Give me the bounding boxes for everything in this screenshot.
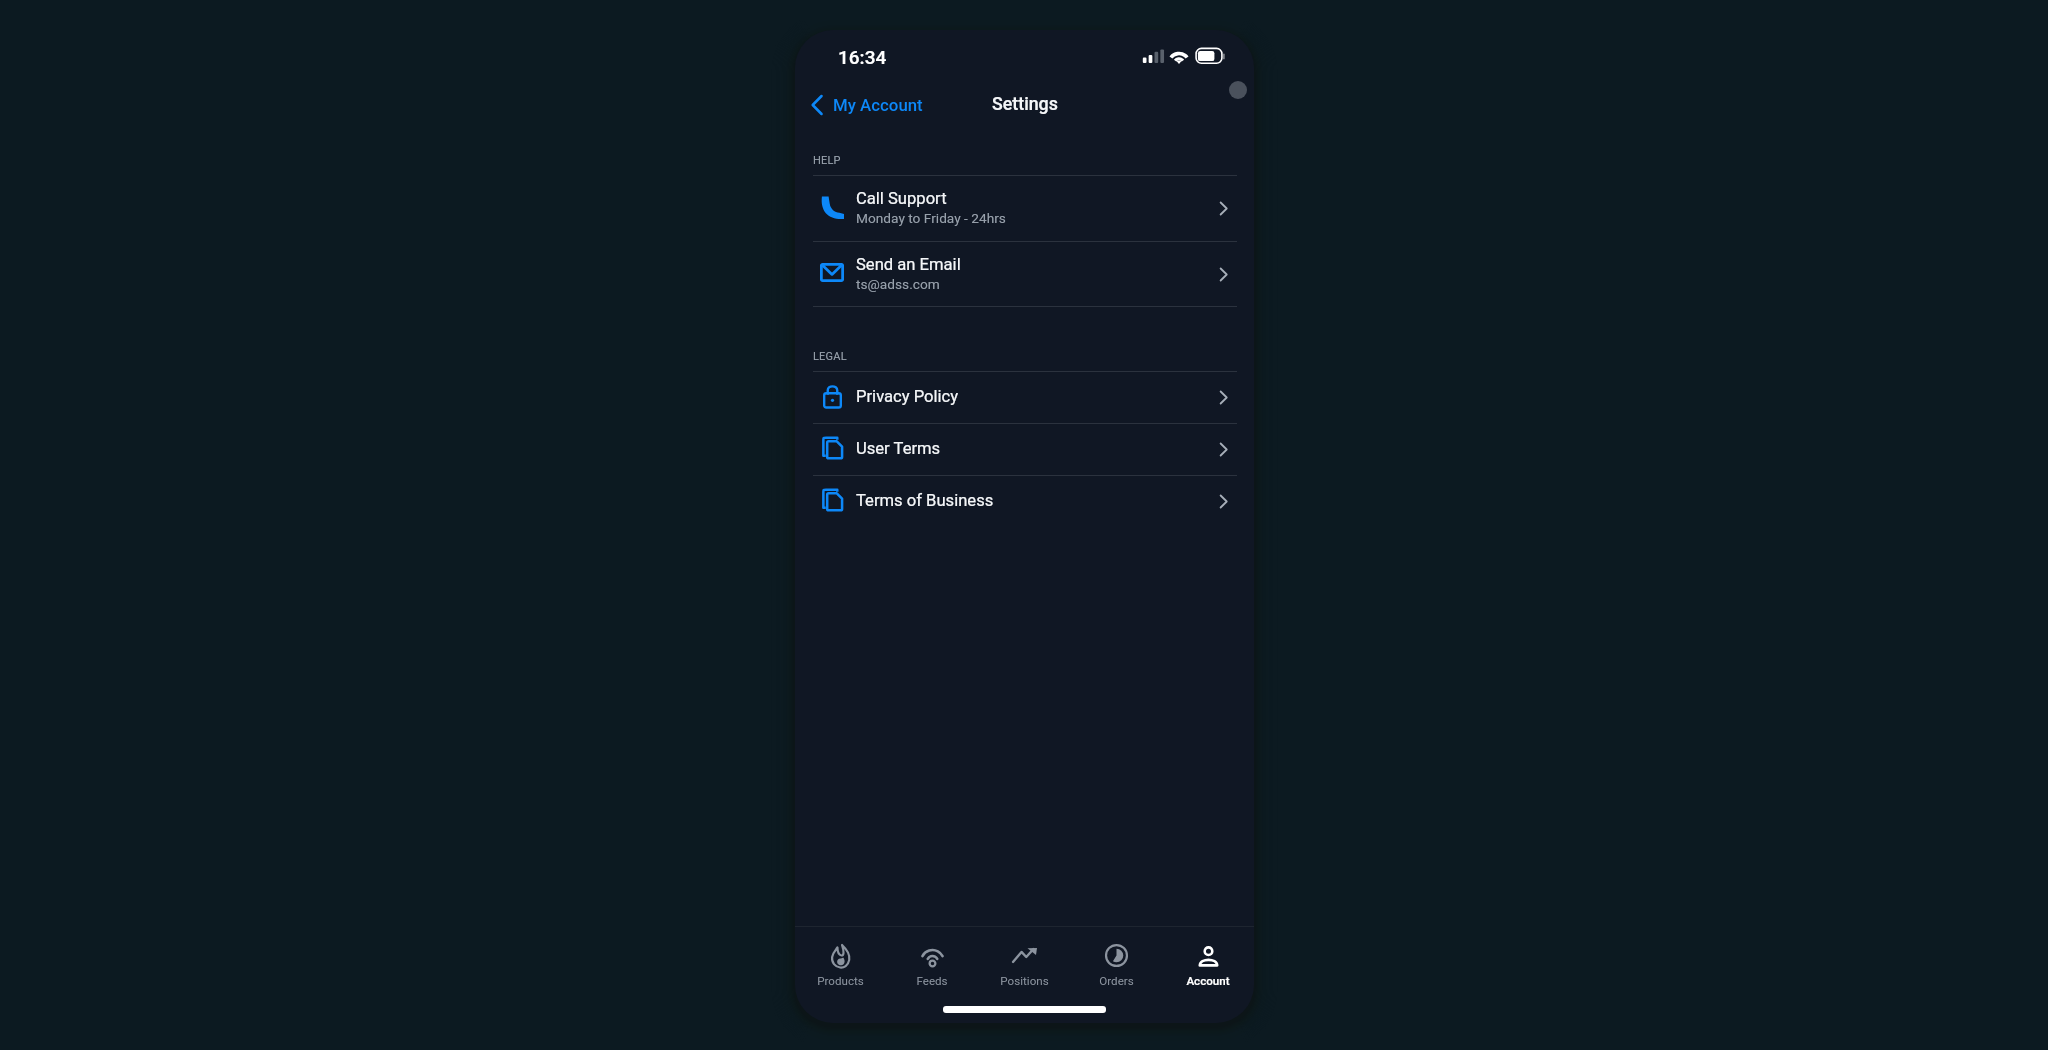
staticText: 16:34 (838, 46, 887, 68)
staticText: Monday to Friday - 24hrs (856, 210, 1006, 226)
button[interactable]: Terms of Business (795, 476, 1254, 527)
staticText: Settings (992, 93, 1058, 114)
staticText: Products (817, 974, 864, 988)
staticText: Call Support (856, 189, 947, 208)
button[interactable]: My Account (801, 90, 935, 122)
staticText: Terms of Business (856, 491, 994, 510)
staticText: Positions (1000, 974, 1049, 988)
staticText: Orders (1099, 974, 1134, 988)
staticText: HELP (813, 154, 841, 167)
staticText: Account (1186, 974, 1230, 988)
staticText: Privacy Policy (856, 387, 959, 406)
staticText: Feeds (916, 974, 948, 988)
button[interactable]: Feeds (886, 927, 978, 993)
button[interactable]: User Terms (795, 424, 1254, 475)
staticText: ts@adss.com (856, 276, 940, 292)
button[interactable]: Profile (1229, 81, 1247, 99)
staticText: My Account (833, 95, 923, 115)
button[interactable]: Privacy Policy (795, 372, 1254, 423)
button[interactable]: Orders (1070, 927, 1162, 993)
button[interactable]: Call Support (795, 176, 1254, 241)
button[interactable]: Products (795, 927, 886, 993)
staticText: User Terms (856, 439, 941, 458)
button[interactable]: Account (1162, 927, 1254, 993)
button[interactable]: Send an Email (795, 242, 1254, 306)
staticText: Send an Email (856, 255, 961, 274)
button[interactable]: Positions (978, 927, 1070, 993)
staticText: LEGAL (813, 350, 847, 363)
